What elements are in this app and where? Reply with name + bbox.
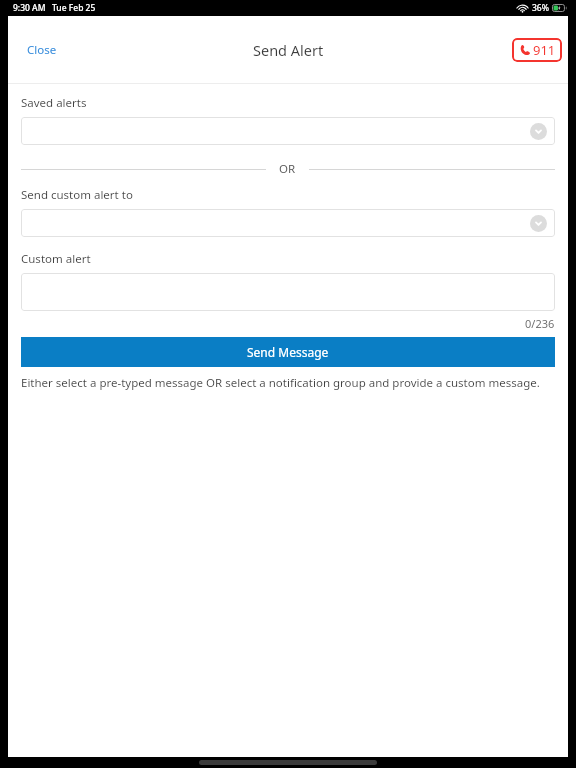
button[interactable]: Open dropdown (21, 209, 555, 237)
staticText: 9:30 AM (13, 2, 46, 14)
staticText: Send Alert (253, 40, 324, 60)
staticText: Send custom alert to (21, 187, 133, 203)
staticText: Custom alert (21, 251, 91, 267)
staticText: Tue Feb 25 (52, 2, 96, 14)
button[interactable]: Send Message (21, 337, 555, 367)
staticText: Close (27, 42, 57, 58)
staticText: 0/236 (525, 316, 555, 331)
button[interactable]: Call 911 (512, 38, 562, 62)
staticText: 911 (533, 41, 556, 59)
staticText: Saved alerts (21, 95, 87, 111)
staticText: Either select a pre-typed message OR sel… (21, 375, 540, 391)
button[interactable]: Close (19, 36, 65, 64)
button[interactable]: Open dropdown (21, 117, 555, 145)
button[interactable]: Custom alert text field (21, 273, 555, 311)
staticText: 36% (532, 2, 549, 14)
staticText: Send Message (247, 344, 329, 360)
staticText: OR (279, 161, 296, 177)
